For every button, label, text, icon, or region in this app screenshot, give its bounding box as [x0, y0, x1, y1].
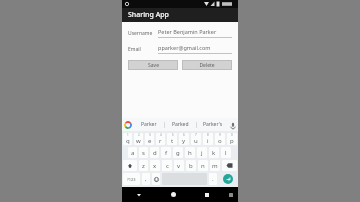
staticText: g — [176, 149, 180, 157]
button[interactable]: ?123 — [123, 173, 140, 185]
button[interactable]: Delete — [182, 60, 232, 70]
button[interactable]: f — [161, 147, 171, 158]
staticText: Parker — [141, 121, 157, 128]
button[interactable]: Emoji — [152, 173, 160, 185]
button[interactable]: g — [173, 147, 183, 158]
staticText: m — [212, 162, 218, 170]
button[interactable]: Backspace — [222, 160, 237, 171]
button[interactable]: , — [142, 173, 150, 185]
button[interactable]: b — [186, 160, 196, 171]
button[interactable]: Parker — [134, 118, 164, 131]
staticText: Sharing App — [128, 10, 169, 20]
button[interactable]: Google — [122, 118, 134, 131]
staticText: 0 — [231, 133, 233, 137]
staticText: Parked — [172, 121, 189, 128]
button[interactable]: c — [162, 160, 172, 171]
staticText: q — [126, 137, 130, 145]
staticText: u — [194, 137, 198, 145]
button[interactable]: Parked — [165, 118, 196, 131]
staticText: w — [136, 137, 141, 145]
button[interactable]: Save — [128, 60, 178, 70]
button[interactable]: x — [150, 160, 160, 171]
button[interactable]: 7 — [191, 133, 201, 145]
staticText: y — [182, 137, 186, 145]
button[interactable]: 9 — [215, 133, 225, 145]
staticText: n — [201, 162, 205, 170]
button[interactable]: . — [209, 173, 217, 185]
button[interactable]: Parker's — [197, 118, 228, 131]
staticText: 4 — [160, 133, 162, 137]
staticText: h — [188, 149, 192, 157]
staticText: . — [212, 175, 214, 183]
staticText: c — [166, 162, 169, 170]
button[interactable]: Voice input — [228, 118, 238, 131]
staticText: o — [218, 137, 222, 145]
button[interactable]: a — [128, 147, 137, 158]
staticText: s — [142, 149, 145, 157]
staticText: Peter Benjamin Parker — [158, 28, 217, 35]
staticText: i — [207, 137, 209, 145]
button[interactable]: h — [185, 147, 195, 158]
button[interactable]: Email — [128, 44, 232, 54]
staticText: p — [230, 137, 234, 145]
staticText: Save — [148, 62, 159, 69]
staticText: e — [148, 137, 152, 145]
staticText: 2 — [138, 133, 140, 137]
staticText: Username — [128, 30, 158, 37]
staticText: x — [153, 162, 157, 170]
button[interactable]: Home — [156, 187, 190, 202]
button[interactable]: Recents — [190, 187, 224, 202]
button[interactable]: s — [139, 147, 148, 158]
button[interactable]: 0 — [227, 133, 237, 145]
staticText: 8 — [207, 133, 209, 137]
staticText: 7 — [195, 133, 197, 137]
button[interactable]: Sharing App — [122, 8, 238, 22]
staticText: ?123 — [127, 177, 136, 182]
staticText: v — [177, 162, 181, 170]
staticText: 6 — [183, 133, 185, 137]
staticText: f — [165, 149, 168, 157]
staticText: a — [131, 149, 135, 157]
button[interactable]: 2 — [134, 133, 143, 145]
button[interactable]: Enter — [223, 174, 233, 184]
button[interactable]: 1 — [123, 133, 132, 145]
button[interactable]: 3 — [145, 133, 154, 145]
button[interactable]: 5 — [167, 133, 177, 145]
staticText: , — [145, 175, 147, 183]
staticText: j — [201, 149, 203, 157]
staticText: z — [142, 162, 145, 170]
button[interactable]: n — [198, 160, 208, 171]
button[interactable]: 8 — [203, 133, 213, 145]
button[interactable]: z — [139, 160, 148, 171]
staticText: k — [212, 149, 216, 157]
button[interactable]: 4 — [156, 133, 165, 145]
button[interactable]: 6 — [179, 133, 189, 145]
staticText: 1 — [127, 133, 129, 137]
button[interactable]: m — [210, 160, 220, 171]
button[interactable]: v — [174, 160, 184, 171]
staticText: Email — [128, 46, 158, 53]
button[interactable]: Username — [128, 28, 232, 38]
staticText: d — [153, 149, 157, 157]
staticText: 9 — [219, 133, 221, 137]
button[interactable]: j — [197, 147, 207, 158]
button[interactable]: Back — [122, 187, 156, 202]
staticText: Parker's — [203, 121, 223, 128]
button[interactable]: Keyboard switcher — [224, 187, 238, 202]
staticText: Delete — [199, 62, 215, 69]
staticText: r — [159, 137, 162, 145]
button[interactable]: k — [209, 147, 219, 158]
staticText: 5 — [172, 133, 174, 137]
button[interactable]: l — [221, 147, 231, 158]
button[interactable]: d — [150, 147, 159, 158]
staticText: pparker@gmail.com — [158, 44, 211, 51]
staticText: t — [171, 137, 174, 145]
staticText: b — [189, 162, 193, 170]
button[interactable]: Shift — [123, 160, 137, 171]
staticText: 3 — [149, 133, 151, 137]
staticText: l — [225, 149, 227, 157]
